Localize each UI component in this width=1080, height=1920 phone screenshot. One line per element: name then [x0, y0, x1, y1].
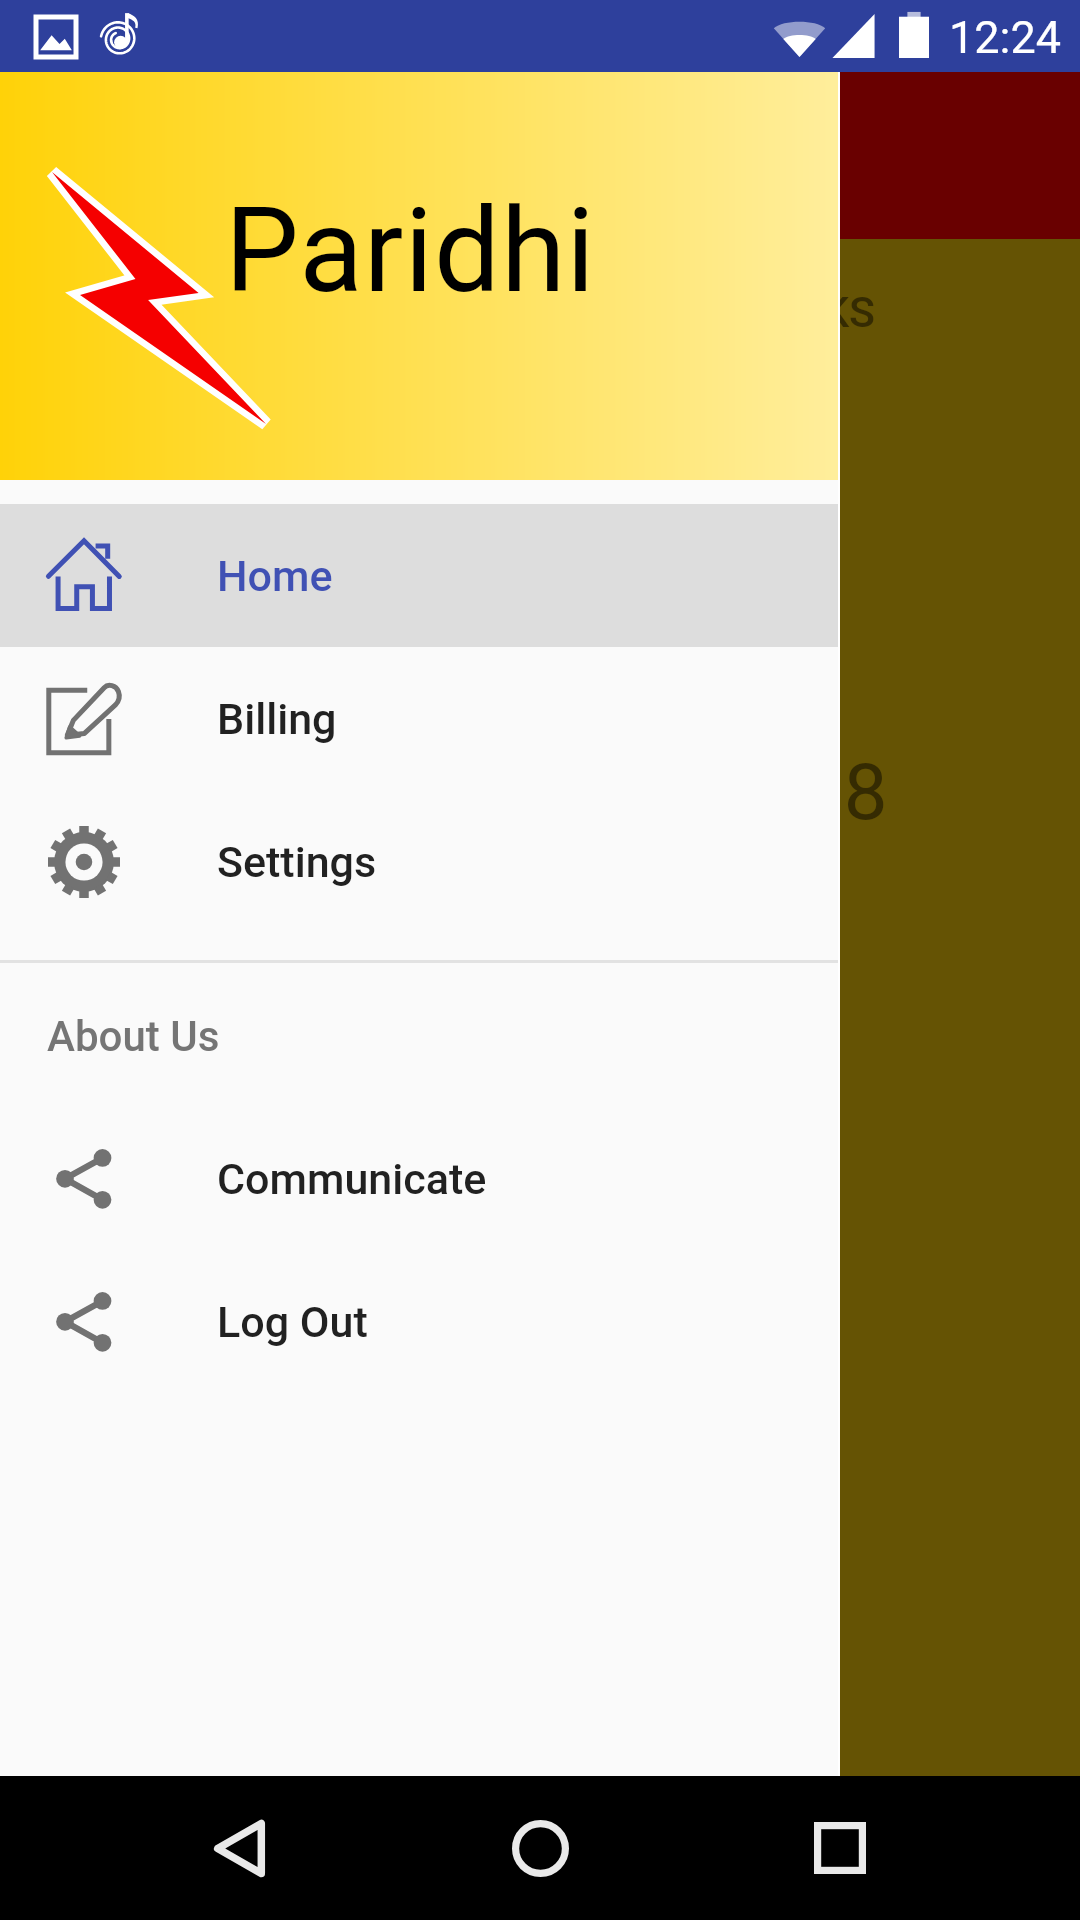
button[interactable]: Billing — [0, 647, 840, 790]
button[interactable]: Home — [468, 1776, 612, 1920]
staticText: Log Out — [217, 1297, 368, 1347]
staticText: MY TASKS — [671, 287, 875, 337]
button[interactable]: Home — [0, 504, 840, 647]
staticText: Settings — [217, 837, 377, 887]
button[interactable]: Settings — [0, 790, 840, 933]
button[interactable]: Recent apps — [768, 1776, 912, 1920]
button[interactable]: Communicate — [0, 1107, 840, 1250]
staticText: Home — [217, 551, 333, 601]
staticText: 18 — [800, 747, 888, 838]
staticText: About Us — [47, 1012, 220, 1061]
staticText: Billing — [217, 694, 337, 744]
staticText: Paridhi — [225, 182, 596, 319]
button[interactable]: Log Out — [0, 1250, 840, 1393]
staticText: Communicate — [217, 1154, 487, 1204]
button[interactable]: Back — [168, 1776, 312, 1920]
staticText: 12:24 — [949, 11, 1062, 64]
